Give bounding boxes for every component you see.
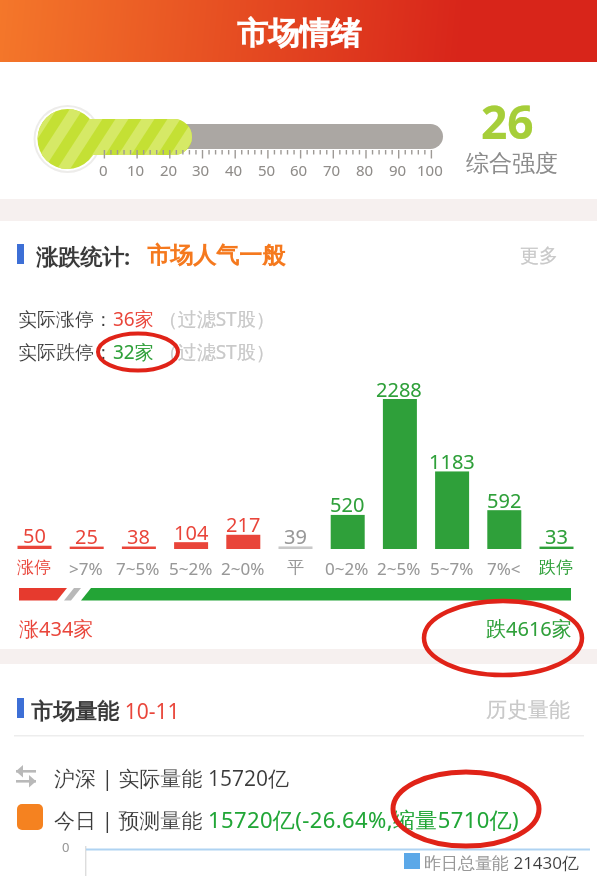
button[interactable]: 历史量能 xyxy=(480,697,570,723)
staticText: 涨434家 xyxy=(19,615,94,642)
staticText: 昨日总量能 21430亿 xyxy=(424,851,580,874)
staticText: 涨停 xyxy=(17,557,51,578)
staticText: 今日 | 预测量能 15720亿(-26.64%,缩量5710亿) xyxy=(54,804,520,834)
staticText: 104 xyxy=(174,519,209,546)
staticText: 100 xyxy=(417,160,443,180)
staticText: 60 xyxy=(290,160,308,180)
staticText: 39 xyxy=(284,523,307,550)
staticText: 平 xyxy=(287,557,304,578)
staticText: 实际涨停：36家 （过滤ST股） xyxy=(18,306,275,332)
staticText: 50 xyxy=(258,160,276,180)
staticText: 0 xyxy=(99,160,108,180)
staticText: 综合强度 xyxy=(466,149,558,178)
staticText: >7% xyxy=(69,557,103,580)
staticText: 更多 xyxy=(520,244,558,268)
staticText: 跌停 xyxy=(539,557,573,578)
staticText: 38 xyxy=(127,523,150,550)
staticText: 80 xyxy=(356,160,374,180)
staticText: 2288 xyxy=(376,376,422,403)
staticText: 30 xyxy=(192,160,210,180)
staticText: 20 xyxy=(160,160,178,180)
staticText: 0 xyxy=(62,838,70,856)
button[interactable] xyxy=(0,0,597,62)
staticText: 实际跌停：32家 （过滤ST股） xyxy=(18,339,275,365)
staticText: 33 xyxy=(545,523,568,550)
staticText: 涨跌统计: xyxy=(36,241,131,271)
staticText: 市场量能 10-11 xyxy=(31,695,180,725)
staticText: 217 xyxy=(226,511,261,538)
staticText: 市场情绪 xyxy=(237,14,361,53)
staticText: 50 xyxy=(23,522,46,549)
staticText: 0~2% xyxy=(325,557,369,580)
staticText: 沪深 | 实际量能 15720亿 xyxy=(54,764,290,793)
button[interactable] xyxy=(10,760,590,794)
button[interactable]: 实际跌停：32家 （过滤ST股） xyxy=(18,339,275,365)
staticText: 7~5% xyxy=(116,557,160,580)
staticText: 市场人气一般 xyxy=(147,241,285,270)
staticText: 2~5% xyxy=(377,557,421,580)
staticText: 25 xyxy=(75,523,98,550)
staticText: 592 xyxy=(487,487,522,514)
staticText: 历史量能 xyxy=(486,697,570,723)
staticText: 7%< xyxy=(487,557,521,580)
staticText: 70 xyxy=(323,160,341,180)
button[interactable]: 实际涨停：36家 （过滤ST股） xyxy=(18,306,275,332)
button[interactable]: 更多 xyxy=(498,244,558,268)
staticText: 10 xyxy=(127,160,145,180)
button[interactable] xyxy=(10,800,590,834)
staticText: 跌4616家 xyxy=(486,615,572,642)
staticText: 90 xyxy=(389,160,407,180)
staticText: 40 xyxy=(225,160,243,180)
staticText: 5~7% xyxy=(430,557,474,580)
staticText: 520 xyxy=(330,491,365,518)
staticText: 1183 xyxy=(429,448,475,475)
staticText: 26 xyxy=(481,90,534,153)
staticText: 5~2% xyxy=(169,557,213,580)
staticText: 2~0% xyxy=(221,557,265,580)
